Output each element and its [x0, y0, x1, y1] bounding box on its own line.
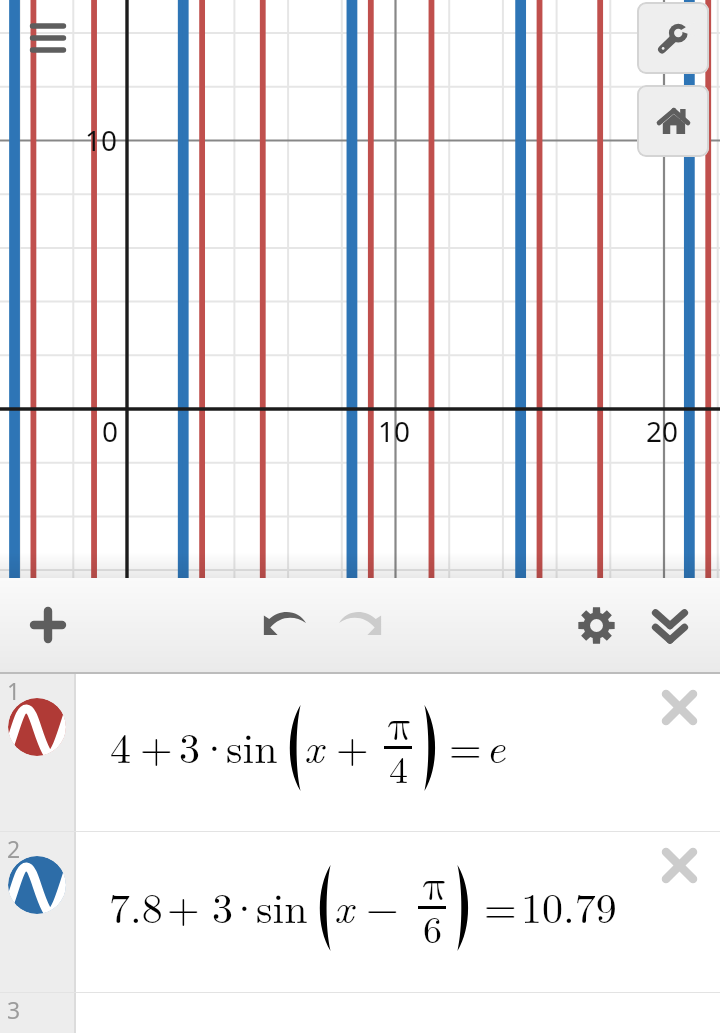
staticText: · — [228, 876, 261, 936]
staticText: 1 — [7, 675, 21, 706]
button[interactable]: Home — [637, 85, 709, 157]
staticText: e — [486, 716, 506, 775]
staticText: 4 — [110, 716, 132, 776]
staticText: 10 — [85, 121, 118, 159]
staticText: + — [336, 716, 369, 776]
button[interactable]: Redo — [329, 591, 391, 653]
staticText: 10 — [378, 412, 411, 450]
staticText: 0 — [102, 412, 119, 450]
staticText: 7.8 — [109, 876, 163, 936]
button[interactable]: Menu — [22, 14, 74, 62]
staticText: x — [304, 716, 324, 775]
staticText: = — [484, 876, 517, 936]
staticText: x — [334, 876, 354, 935]
staticText: 20 — [646, 412, 679, 450]
button[interactable]: Undo — [253, 591, 315, 653]
staticText: 6 — [423, 900, 443, 954]
button[interactable]: Tools — [637, 2, 709, 74]
staticText: 3 — [7, 994, 21, 1025]
staticText: 2 — [7, 833, 21, 864]
button[interactable]: 1 — [0, 674, 720, 831]
staticText: π — [423, 865, 448, 907]
staticText: + — [167, 876, 200, 936]
button[interactable]: 3 — [0, 993, 720, 1033]
button[interactable]: 2 — [0, 832, 720, 992]
button[interactable]: Add — [17, 594, 79, 656]
staticText: sin — [256, 876, 308, 936]
staticText: π — [388, 705, 413, 747]
staticText: sin — [226, 716, 278, 776]
button[interactable]: Collapse — [639, 594, 701, 656]
staticText: 10.79 — [521, 876, 617, 936]
staticText: · — [198, 716, 231, 776]
button[interactable]: Delete — [652, 838, 706, 892]
button[interactable]: Delete — [652, 680, 706, 734]
staticText: 3 — [212, 876, 234, 936]
staticText: + — [140, 716, 173, 776]
staticText: 4 — [389, 740, 409, 794]
staticText: − — [366, 876, 399, 936]
button[interactable]: Settings — [565, 594, 627, 656]
staticText: = — [449, 716, 482, 776]
staticText: 3 — [179, 716, 201, 776]
